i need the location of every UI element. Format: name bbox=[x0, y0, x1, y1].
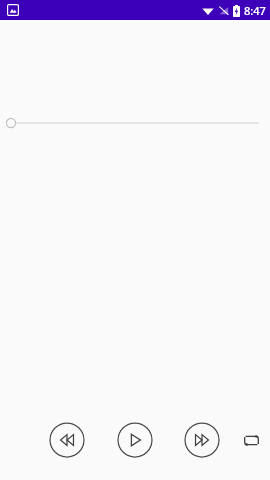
staticText: 8:47 bbox=[244, 3, 266, 18]
button[interactable]: Rewind bbox=[49, 422, 85, 458]
button[interactable]: Play bbox=[117, 422, 153, 458]
button[interactable]: Repeat bbox=[236, 425, 266, 455]
button[interactable]: Fast forward bbox=[184, 422, 220, 458]
button[interactable] bbox=[0, 112, 270, 134]
